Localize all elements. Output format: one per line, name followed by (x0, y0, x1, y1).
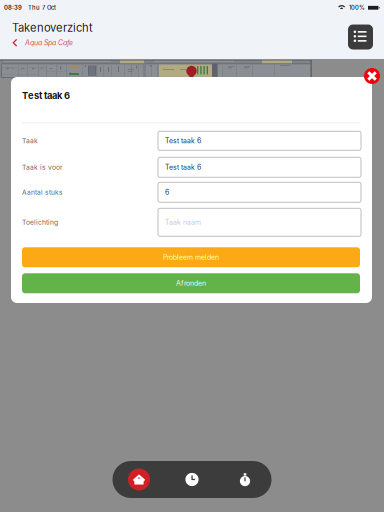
staticText: Probleem melden (163, 253, 219, 261)
staticText: Taak (22, 137, 38, 145)
button[interactable]: Close (364, 68, 380, 84)
button[interactable]: Task list (348, 24, 373, 49)
staticText: Takenoverzicht (12, 21, 93, 35)
button[interactable]: Home (112, 461, 165, 498)
staticText: Afronden (176, 279, 206, 287)
staticText: Thu 7 Oct (28, 4, 56, 11)
button[interactable]: Timer (218, 461, 271, 498)
staticText: 6 (165, 188, 169, 196)
staticText: Test taak 6 (165, 163, 201, 171)
staticText: Aantal stuks (22, 188, 63, 196)
staticText: 08:39 (4, 4, 22, 11)
staticText: Taak is voor (22, 163, 63, 171)
button[interactable]: Probleem melden (22, 247, 360, 267)
staticText: Taak naam (165, 218, 201, 226)
staticText: 100% (349, 4, 365, 11)
staticText: Test taak 6 (22, 90, 70, 101)
staticText: Aqua Spa Cafe (25, 39, 73, 47)
staticText: Test taak 6 (165, 137, 201, 145)
staticText: Toelichting (22, 218, 58, 226)
button[interactable]: History (165, 461, 218, 498)
button[interactable]: Aqua Spa Cafe (12, 39, 73, 47)
button[interactable]: Afronden (22, 273, 360, 293)
